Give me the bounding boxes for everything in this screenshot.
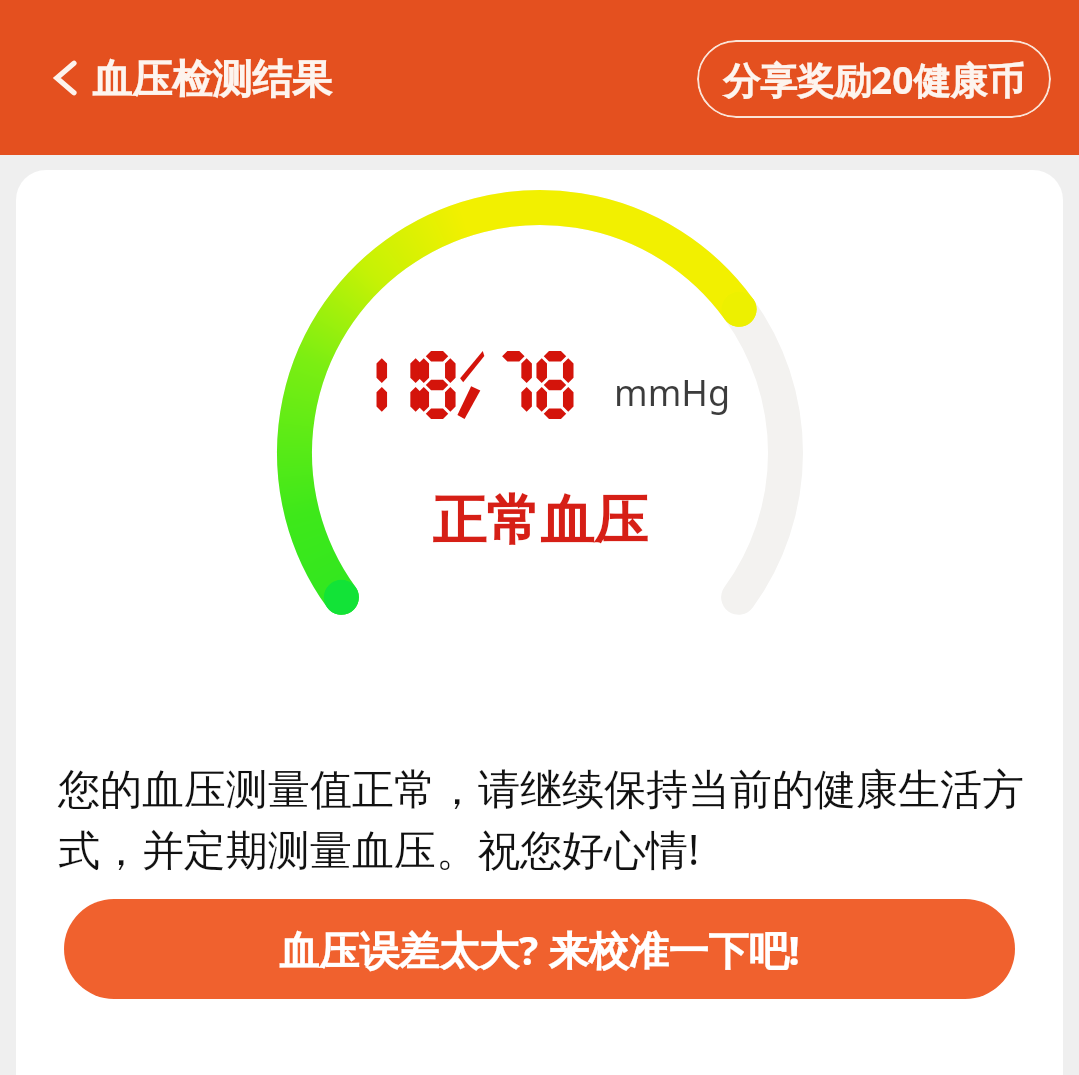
staticText: 血压误差太大? 来校准一下吧! <box>279 922 800 977</box>
staticText: 血压检测结果 <box>92 54 332 104</box>
staticText: 正常血压 <box>432 487 648 555</box>
staticText: 分享奖励20健康币 <box>723 54 1025 105</box>
button[interactable]: 血压误差太大? 来校准一下吧! <box>64 899 1015 999</box>
button[interactable]: Back <box>30 42 102 114</box>
staticText: 您的血压测量值正常，请继续保持当前的健康生活方式，并定期测量血压。祝您好心情! <box>58 764 1033 877</box>
staticText: mmHg <box>614 368 731 417</box>
button[interactable]: 分享奖励20健康币 <box>697 40 1051 118</box>
